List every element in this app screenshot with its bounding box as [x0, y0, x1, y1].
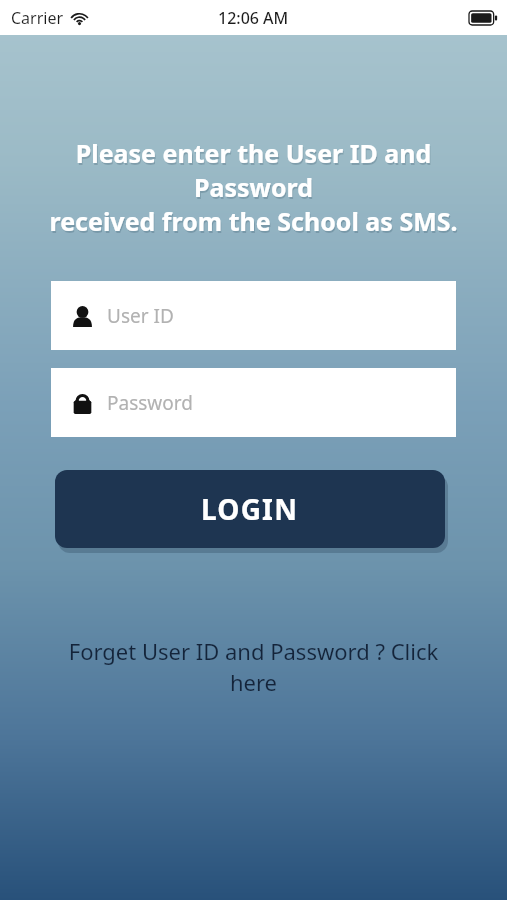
button[interactable]: LOGIN: [55, 470, 445, 548]
staticText: Carrier: [11, 7, 64, 29]
staticText: Please enter the User ID and Password re…: [15, 138, 494, 240]
button[interactable]: Password: [51, 368, 456, 437]
staticText: LOGIN: [201, 490, 299, 528]
staticText: Password: [107, 390, 193, 416]
button[interactable]: User ID: [51, 281, 456, 350]
button[interactable]: Forget User ID and Password ? Click here: [0, 636, 507, 698]
staticText: 12:06 AM: [218, 7, 289, 29]
staticText: Forget User ID and Password ? Click here: [48, 636, 459, 698]
staticText: Please enter the User ID and Password re…: [14, 136, 493, 238]
staticText: User ID: [107, 303, 174, 329]
